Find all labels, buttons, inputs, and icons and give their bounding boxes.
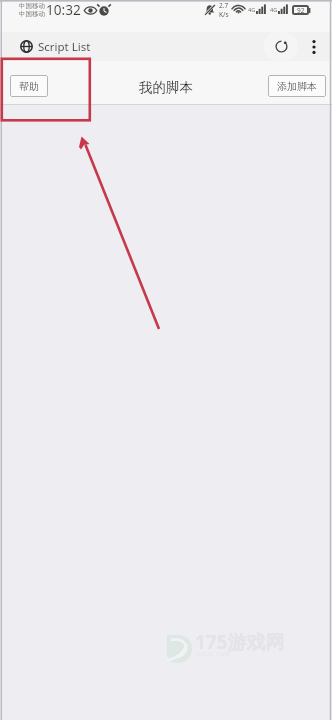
staticText: 中国移动 [19, 10, 45, 18]
staticText: K/s [219, 10, 229, 19]
staticText: 帮助 [19, 80, 39, 93]
button[interactable]: 帮助 [10, 75, 48, 97]
staticText: 2.7 [219, 1, 229, 10]
button[interactable]: More options [299, 32, 328, 61]
staticText: 4G [270, 6, 278, 13]
staticText: Script List [38, 39, 91, 55]
staticText: 我的脚本 [139, 79, 193, 96]
button[interactable]: Refresh [264, 32, 298, 61]
staticText: 10:32 [46, 0, 81, 19]
staticText: 92 [297, 6, 305, 15]
button[interactable]: 添加脚本 [268, 75, 326, 97]
staticText: 4G [248, 6, 256, 13]
staticText: 中国移动 [19, 2, 45, 10]
staticText: 添加脚本 [277, 80, 317, 93]
staticText: 175游戏网 [195, 629, 285, 655]
